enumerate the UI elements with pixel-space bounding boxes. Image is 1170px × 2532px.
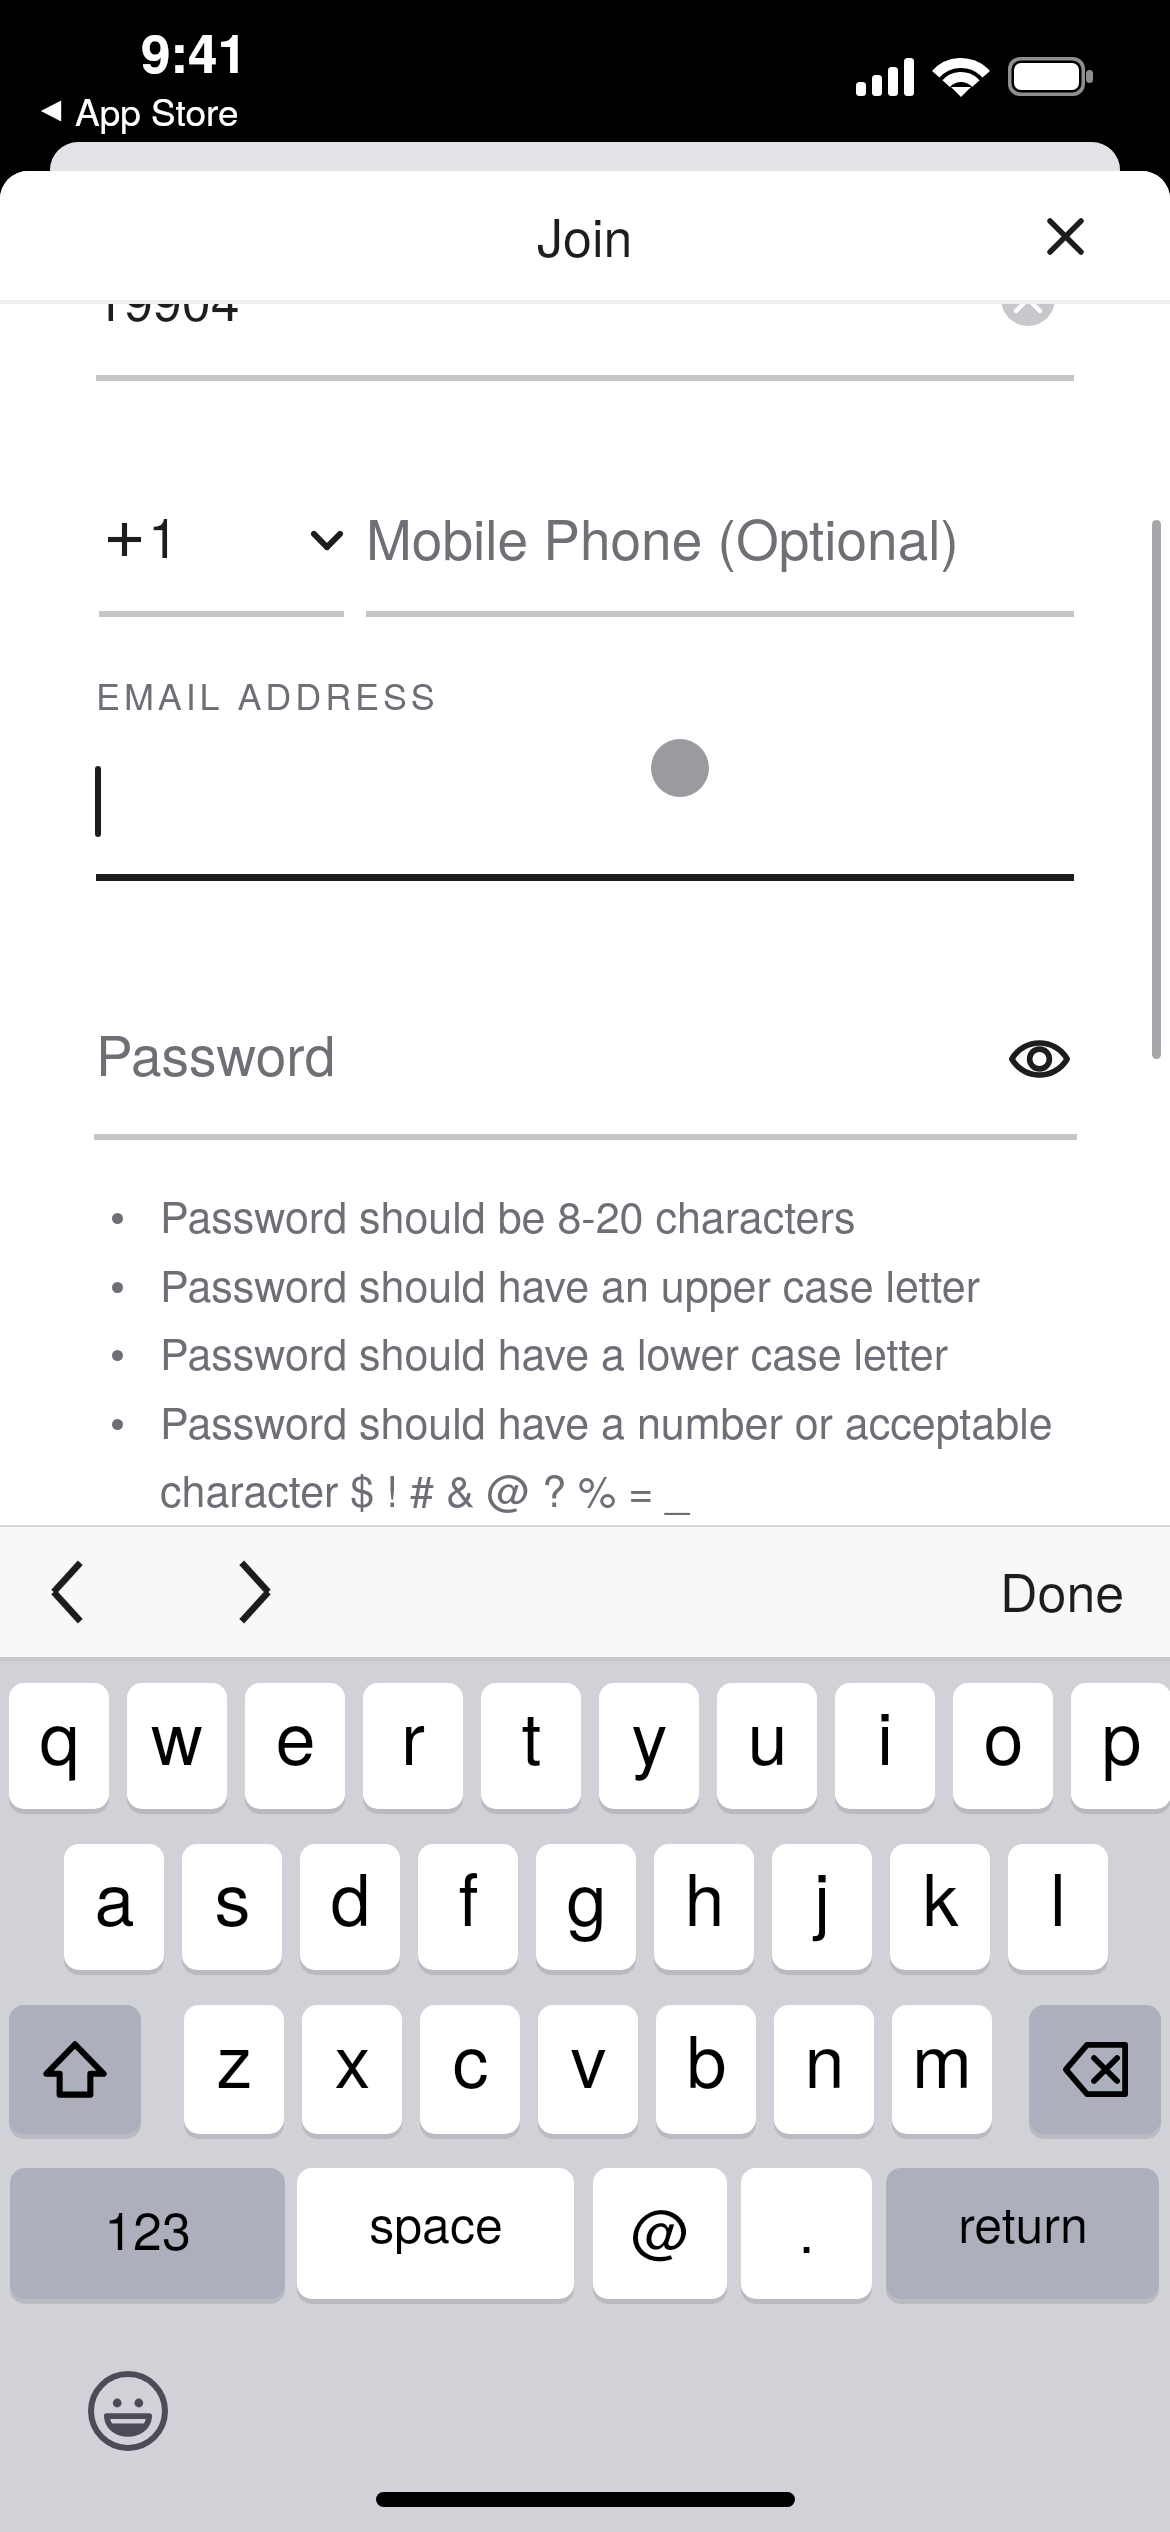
staticText: y xyxy=(631,1683,668,1785)
staticText: @ xyxy=(631,2186,690,2269)
button[interactable]: u xyxy=(717,1683,817,1809)
staticText: return xyxy=(958,2186,1088,2258)
button[interactable]: Previous field xyxy=(21,1546,113,1638)
button[interactable]: e xyxy=(245,1683,345,1809)
staticText: space xyxy=(369,2186,503,2258)
staticText: 9:41 xyxy=(141,13,248,89)
button[interactable]: Emoji keyboard xyxy=(86,2369,170,2453)
button[interactable]: Done xyxy=(1000,1552,1125,1626)
staticText: App Store xyxy=(75,84,239,137)
button[interactable]: w xyxy=(127,1683,227,1809)
staticText: . xyxy=(798,2186,815,2269)
staticText: Password should have a number or accepta… xyxy=(160,1390,1053,1452)
staticText: j xyxy=(814,1844,830,1946)
staticText: x xyxy=(334,2005,371,2108)
button[interactable]: z xyxy=(184,2005,284,2134)
staticText: k xyxy=(922,1844,959,1946)
button[interactable]: Backspace xyxy=(1029,2005,1161,2134)
other: Signal, Wi-Fi and battery status xyxy=(856,50,1096,100)
button[interactable]: q xyxy=(9,1683,109,1809)
button[interactable]: . xyxy=(741,2168,872,2299)
button[interactable]: Numbers xyxy=(10,2168,285,2299)
staticText: q xyxy=(39,1683,80,1785)
staticText: c xyxy=(452,2005,489,2108)
button[interactable]: @ xyxy=(593,2168,727,2299)
staticText: o xyxy=(983,1683,1024,1785)
button[interactable]: p xyxy=(1071,1683,1170,1809)
staticText: Password should have a lower case letter xyxy=(160,1321,949,1383)
button[interactable]: Clear zip code xyxy=(1001,272,1055,326)
button[interactable]: m xyxy=(892,2005,992,2134)
button[interactable]: l xyxy=(1008,1844,1108,1970)
staticText: h xyxy=(684,1844,725,1946)
staticText: character $ ! # & @ ? % = _ xyxy=(160,1458,690,1520)
button[interactable]: Select country calling code xyxy=(296,508,358,572)
staticText: g xyxy=(566,1844,607,1946)
button[interactable]: d xyxy=(300,1844,400,1970)
staticText: z xyxy=(216,2005,253,2108)
button[interactable]: Next field xyxy=(209,1546,301,1638)
staticText: Done xyxy=(1000,1552,1125,1626)
button[interactable]: Password xyxy=(94,1010,984,1136)
button[interactable]: Close xyxy=(1019,190,1111,282)
button[interactable]: h xyxy=(654,1844,754,1970)
button[interactable]: j xyxy=(772,1844,872,1970)
staticText: a xyxy=(94,1844,135,1946)
staticText: f xyxy=(458,1844,479,1946)
button[interactable]: y xyxy=(599,1683,699,1809)
staticText: d xyxy=(330,1844,371,1946)
staticText: r xyxy=(401,1683,425,1785)
button[interactable]: Shift xyxy=(9,2005,141,2134)
button[interactable]: return xyxy=(886,2168,1159,2299)
staticText: l xyxy=(1050,1844,1066,1946)
button[interactable]: c xyxy=(420,2005,520,2134)
button[interactable]: g xyxy=(536,1844,636,1970)
staticText: EMAIL ADDRESS xyxy=(96,669,439,721)
button[interactable]: i xyxy=(835,1683,935,1809)
staticText: e xyxy=(275,1683,316,1785)
button[interactable]: Show password xyxy=(999,1019,1079,1099)
staticText: s xyxy=(214,1844,251,1946)
button[interactable]: n xyxy=(774,2005,874,2134)
button[interactable]: space xyxy=(297,2168,574,2299)
button[interactable]: k xyxy=(890,1844,990,1970)
staticText: Password should be 8-20 characters xyxy=(160,1184,856,1246)
staticText: n xyxy=(804,2005,845,2108)
staticText: w xyxy=(151,1683,203,1785)
button[interactable]: o xyxy=(953,1683,1053,1809)
staticText: u xyxy=(747,1683,788,1785)
staticText: 19904 xyxy=(95,261,240,335)
staticText: m xyxy=(912,2005,972,2108)
staticText: b xyxy=(686,2005,727,2108)
staticText: i xyxy=(877,1683,893,1785)
staticText: Password should have an upper case lette… xyxy=(160,1253,981,1315)
staticText: Password xyxy=(96,1013,336,1092)
staticText: 1 xyxy=(148,495,179,574)
staticText: v xyxy=(570,2005,607,2108)
button[interactable]: v xyxy=(538,2005,638,2134)
button[interactable]: b xyxy=(656,2005,756,2134)
button[interactable]: x xyxy=(302,2005,402,2134)
button[interactable]: t xyxy=(481,1683,581,1809)
staticText: 123 xyxy=(104,2190,191,2264)
button[interactable]: f xyxy=(418,1844,518,1970)
button[interactable]: a xyxy=(64,1844,164,1970)
staticText: Mobile Phone (Optional) xyxy=(366,497,959,576)
button[interactable]: Mobile Phone (Optional) xyxy=(366,490,1074,616)
staticText: Join xyxy=(537,197,633,261)
staticText: t xyxy=(521,1683,542,1785)
button[interactable]: Email address xyxy=(96,745,1074,877)
staticText: p xyxy=(1101,1683,1142,1785)
button[interactable]: r xyxy=(363,1683,463,1809)
button[interactable]: s xyxy=(182,1844,282,1970)
